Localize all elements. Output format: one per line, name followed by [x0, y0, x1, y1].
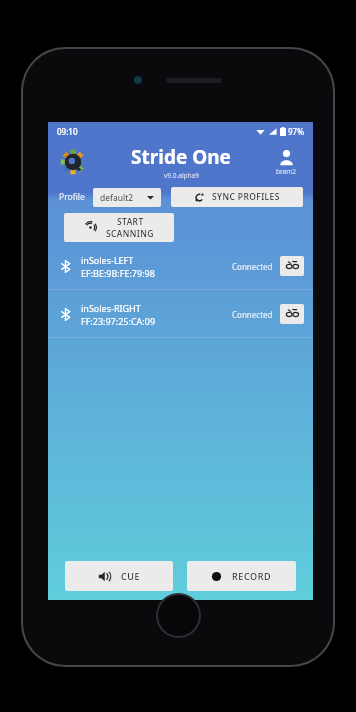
staticText: Stride One	[131, 144, 231, 170]
staticText: inSoles-LEFT	[81, 254, 134, 266]
staticText: Connected	[232, 261, 273, 272]
button[interactable]: App settings	[56, 145, 90, 179]
button[interactable]: Account bram2	[268, 149, 304, 176]
button[interactable]: RECORD	[187, 561, 296, 591]
staticText: SCANNING	[106, 228, 154, 240]
button[interactable]: Disconnect inSoles-LEFT	[280, 256, 304, 276]
button[interactable]: START	[64, 213, 174, 242]
staticText: v9.0.alpha9	[164, 171, 199, 180]
staticText: RECORD	[232, 570, 272, 582]
staticText: Profile	[59, 191, 85, 203]
staticText: Connected	[232, 309, 273, 320]
staticText: default2	[100, 192, 134, 204]
staticText: START	[117, 216, 144, 228]
button[interactable]: CUE	[65, 561, 173, 591]
staticText: CUE	[121, 570, 141, 582]
staticText: bram2	[276, 167, 296, 176]
staticText: 09:10	[57, 126, 78, 137]
button[interactable]: inSoles-LEFT	[48, 249, 313, 283]
staticText: inSoles-RIGHT	[81, 302, 141, 314]
staticText: FF:23:97:25:CA:09	[81, 315, 156, 327]
button[interactable]: Disconnect inSoles-RIGHT	[280, 304, 304, 324]
staticText: EF:BE:9B:FE:79:98	[81, 267, 155, 279]
staticText: 97%	[288, 126, 304, 137]
button[interactable]: SYNC PROFILES	[171, 187, 303, 207]
button[interactable]: inSoles-RIGHT	[48, 297, 313, 331]
button[interactable]: default2	[93, 188, 161, 207]
staticText: SYNC PROFILES	[212, 191, 280, 203]
